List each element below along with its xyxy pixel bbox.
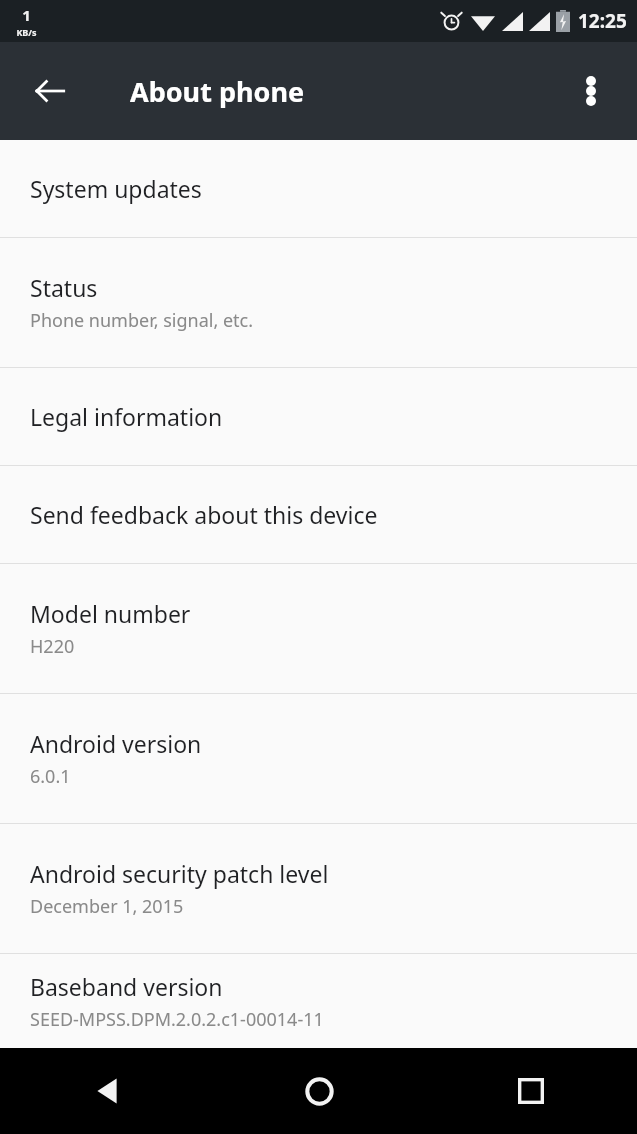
- button[interactable]: Status: [0, 238, 637, 367]
- staticText: KB/s: [16, 26, 37, 38]
- staticText: Model number: [30, 598, 191, 629]
- staticText: Phone number, signal, etc.: [30, 308, 254, 333]
- staticText: December 1, 2015: [30, 894, 184, 919]
- staticText: About phone: [130, 73, 305, 110]
- staticText: Status: [30, 272, 98, 303]
- staticText: Android version: [30, 728, 202, 759]
- button[interactable]: Navigate up: [14, 55, 86, 127]
- staticText: Legal information: [30, 401, 223, 432]
- button[interactable]: Legal information: [0, 368, 637, 465]
- staticText: 1: [22, 5, 31, 25]
- button[interactable]: Send feedback about this device: [0, 466, 637, 563]
- button[interactable]: System updates: [0, 140, 637, 237]
- button[interactable]: Baseband version: [0, 954, 637, 1048]
- button[interactable]: Back: [0, 1048, 213, 1134]
- staticText: System updates: [30, 173, 202, 204]
- button[interactable]: More options: [559, 59, 623, 123]
- button[interactable]: Android security patch level: [0, 824, 637, 953]
- button[interactable]: Recent apps: [425, 1048, 637, 1134]
- staticText: SEED-MPSS.DPM.2.0.2.c1-00014-11: [30, 1007, 324, 1032]
- staticText: Baseband version: [30, 971, 223, 1002]
- staticText: H220: [30, 634, 75, 659]
- staticText: Android security patch level: [30, 858, 329, 889]
- staticText: 6.0.1: [30, 764, 71, 789]
- button[interactable]: Model number: [0, 564, 637, 693]
- staticText: Send feedback about this device: [30, 499, 378, 530]
- button[interactable]: Android version: [0, 694, 637, 823]
- button[interactable]: Home: [213, 1048, 425, 1134]
- staticText: 12:25: [578, 8, 627, 34]
